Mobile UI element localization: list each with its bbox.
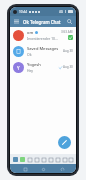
staticText: Yogesh — [27, 62, 41, 67]
button[interactable]: Saved Messages — [10, 43, 76, 59]
button[interactable]: Menu — [13, 18, 20, 25]
staticText: Aug 30 — [63, 49, 73, 53]
staticText: 3:53 AM — [61, 30, 73, 34]
button[interactable]: Grid — [12, 156, 19, 163]
button[interactable]: Settings — [40, 156, 47, 163]
staticText: Investierender 10000 Aufser... — [27, 36, 59, 41]
button[interactable]: Volume — [33, 156, 40, 163]
button[interactable]: Recents — [58, 165, 66, 173]
button[interactable]: Calls — [26, 156, 33, 163]
staticText: Ok — [27, 52, 32, 57]
button[interactable]: New message — [58, 136, 71, 149]
staticText: 4G — [59, 10, 63, 14]
button[interactable]: Bookmark — [54, 156, 61, 163]
button[interactable]: Y — [10, 59, 76, 75]
button[interactable]: om — [10, 27, 76, 43]
button[interactable]: Star — [47, 156, 54, 163]
button[interactable]: More — [68, 156, 74, 163]
staticText: Aug 30 — [63, 65, 73, 69]
staticText: om — [27, 30, 34, 35]
button[interactable]: Contacts — [19, 156, 26, 163]
button[interactable]: Search — [66, 18, 73, 25]
staticText: 10:44 — [19, 10, 28, 14]
staticText: Ok Telegram Chat — [23, 19, 61, 25]
staticText: Y — [17, 65, 20, 71]
button[interactable]: Folder — [61, 156, 68, 163]
button[interactable]: Home — [39, 165, 47, 173]
button[interactable]: Back — [21, 165, 29, 173]
staticText: Hey — [27, 68, 34, 73]
staticText: Saved Messages — [27, 46, 59, 51]
